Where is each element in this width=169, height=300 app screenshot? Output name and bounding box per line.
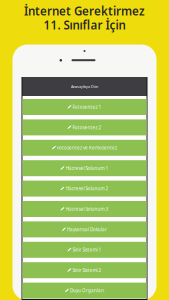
staticText: Fotosentez 2 — [73, 124, 102, 130]
staticText: İnternet Gerektirmez — [24, 3, 145, 19]
button[interactable]: Sinir Sistemi 1 — [22, 242, 146, 258]
staticText: Duyu Organları — [70, 287, 104, 294]
button[interactable]: Hücresel Solunum 1 — [22, 160, 146, 176]
staticText: Fotosentez ve Kemosentez — [57, 145, 117, 151]
button[interactable]: Hücresel Solunum 2 — [22, 181, 146, 197]
staticText: Anasayfaya Dön — [71, 84, 98, 89]
button[interactable]: Hayvansal Dokular — [22, 221, 146, 237]
staticText: Sinir Sistemi 2 — [73, 267, 102, 273]
button[interactable]: Anasayfaya Dön — [22, 77, 146, 96]
button[interactable]: Duyu Organları — [22, 283, 146, 299]
button[interactable]: Fotosentez ve Kemosentez — [22, 140, 146, 156]
button[interactable]: Fotosentez 2 — [22, 119, 146, 135]
staticText: Hücresel Solunum 3 — [66, 206, 109, 212]
staticText: 11. Sınıflar İçin — [43, 17, 125, 33]
staticText: Sinir Sistemi 1 — [73, 247, 102, 253]
button[interactable]: Sinir Sistemi 2 — [22, 262, 146, 278]
staticText: Hayvansal Dokular — [67, 226, 107, 232]
button[interactable]: Fotosentez 1 — [22, 99, 146, 115]
staticText: Hücresel Solunum 1 — [66, 165, 109, 171]
button[interactable]: Hücresel Solunum 3 — [22, 201, 146, 217]
staticText: Hücresel Solunum 2 — [66, 185, 109, 192]
staticText: Fotosentez 1 — [73, 104, 102, 110]
